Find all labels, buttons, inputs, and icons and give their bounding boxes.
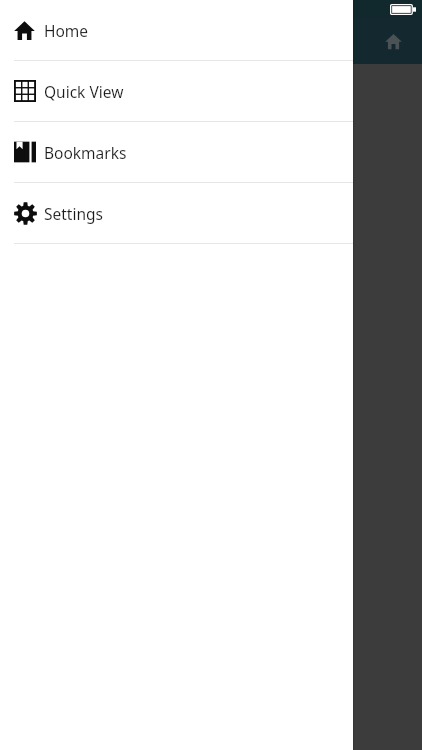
button[interactable]: Home	[378, 26, 408, 56]
staticText: Home	[44, 20, 89, 41]
staticText: Settings	[44, 203, 103, 224]
button[interactable]: Home	[0, 0, 353, 60]
staticText: Bookmarks	[44, 142, 127, 163]
button[interactable]: Settings	[0, 183, 353, 243]
staticText: Quick View	[44, 81, 124, 102]
button[interactable]: Quick View	[0, 61, 353, 121]
button[interactable]: Bookmarks	[0, 122, 353, 182]
